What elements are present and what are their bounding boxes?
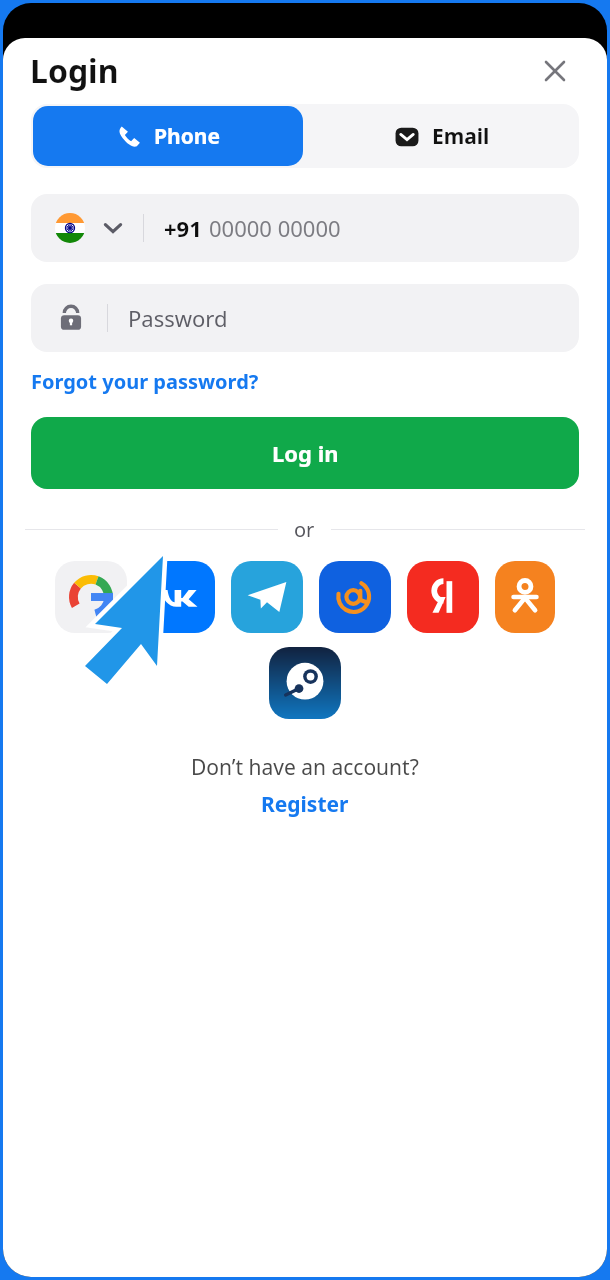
button[interactable]: Sign in with Google bbox=[55, 561, 127, 633]
button[interactable]: Sign in with Steam bbox=[269, 647, 341, 719]
staticText: or bbox=[294, 516, 315, 543]
staticText: Password bbox=[128, 303, 228, 333]
button[interactable]: Sign in with Yandex bbox=[407, 561, 479, 633]
staticText: Register bbox=[261, 790, 349, 819]
button[interactable]: +91 bbox=[31, 194, 579, 262]
staticText: Log in bbox=[272, 438, 339, 468]
staticText: Login bbox=[30, 49, 119, 93]
staticText: Email bbox=[432, 122, 490, 151]
button[interactable]: Phone bbox=[33, 106, 303, 166]
button[interactable]: Email bbox=[305, 104, 579, 168]
staticText: Forgot your password? bbox=[31, 368, 259, 395]
button[interactable]: Forgot your password? bbox=[31, 368, 259, 395]
button[interactable]: Sign in with Telegram bbox=[231, 561, 303, 633]
staticText: Don’t have an account? bbox=[191, 753, 419, 782]
button[interactable]: Register bbox=[261, 790, 349, 819]
staticText: 00000 00000 bbox=[209, 213, 341, 243]
button[interactable]: Sign in with VK bbox=[143, 561, 215, 633]
button[interactable]: Sign in with Mail.ru bbox=[319, 561, 391, 633]
button[interactable]: Sign in with Odnoklassniki bbox=[495, 561, 555, 633]
button[interactable]: Log in bbox=[31, 417, 579, 489]
staticText: Phone bbox=[154, 122, 221, 151]
button[interactable]: Password bbox=[31, 284, 579, 352]
button[interactable]: Close bbox=[539, 55, 571, 87]
staticText: +91 bbox=[164, 213, 202, 243]
